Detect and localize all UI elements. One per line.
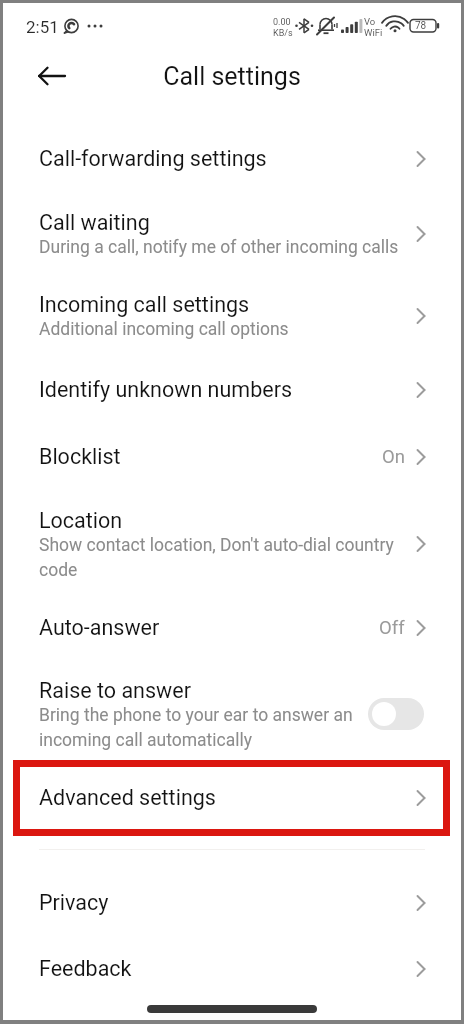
staticText: Auto-answer: [39, 615, 160, 640]
button[interactable]: Call-forwarding settings: [3, 106, 461, 171]
staticText: Raise to answer: [39, 678, 191, 703]
staticText: Call settings: [163, 62, 301, 91]
staticText: Privacy: [39, 890, 109, 915]
staticText: Call waiting: [39, 210, 150, 235]
staticText: 78: [415, 20, 427, 32]
button[interactable]: Identify unknown numbers: [3, 340, 461, 402]
button[interactable]: Incoming call settings: [3, 258, 461, 340]
staticText: KB/s: [273, 28, 293, 39]
staticText: Off: [379, 617, 405, 639]
staticText: Additional incoming call options: [39, 319, 409, 340]
staticText: Feedback: [39, 956, 132, 981]
button[interactable]: Raise to answer: [3, 640, 461, 750]
staticText: Show contact location, Don't auto-dial c…: [39, 535, 401, 580]
staticText: Vo: [364, 16, 376, 27]
button[interactable]: Location: [3, 469, 461, 580]
staticText: Identify unknown numbers: [39, 377, 293, 402]
button[interactable]: Call waiting: [3, 171, 461, 258]
staticText: WiFi: [364, 27, 383, 38]
staticText: Location: [39, 508, 123, 533]
button[interactable]: Feedback: [3, 915, 461, 981]
staticText: Incoming call settings: [39, 292, 250, 317]
staticText: On: [382, 446, 405, 468]
staticText: Call-forwarding settings: [39, 146, 267, 171]
staticText: During a call, notify me of other incomi…: [39, 237, 409, 258]
staticText: Bring the phone to your ear to answer an…: [39, 705, 368, 750]
button[interactable]: Advanced settings: [3, 750, 461, 810]
button[interactable]: Privacy: [3, 850, 461, 915]
button[interactable]: Back: [38, 55, 80, 97]
button[interactable]: Raise to answer toggle: [368, 698, 424, 730]
staticText: 0.00: [273, 17, 291, 28]
staticText: Blocklist: [39, 444, 121, 469]
button[interactable]: Auto-answer: [3, 580, 461, 640]
staticText: 2:51: [26, 17, 59, 37]
button[interactable]: Blocklist: [3, 402, 461, 469]
staticText: Advanced settings: [39, 785, 216, 810]
